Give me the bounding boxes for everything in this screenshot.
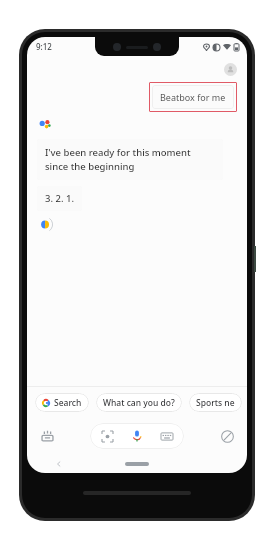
button[interactable]: What can you do? [96, 393, 182, 412]
button[interactable]: I've been ready for this moment since th… [37, 139, 223, 180]
button[interactable]: Snapshot [37, 426, 57, 446]
staticText: 9:12 [36, 41, 52, 52]
staticText: What can you do? [103, 397, 175, 409]
staticText: Beatbox for me [160, 91, 226, 103]
staticText: 3. 2. 1. [45, 192, 74, 205]
staticText: I've been ready for this moment since th… [45, 146, 215, 173]
staticText: Sports ne [196, 397, 235, 409]
staticText: Search [54, 397, 82, 409]
button[interactable]: Keyboard [158, 427, 176, 445]
button[interactable]: Back [53, 458, 65, 470]
button[interactable]: 3. 2. 1. [37, 186, 82, 211]
button[interactable]: Explore [217, 426, 237, 446]
button[interactable]: Google Lens [98, 427, 116, 445]
button[interactable]: Account [224, 63, 237, 76]
button[interactable]: Voice search [127, 426, 147, 446]
button[interactable]: Sports ne [189, 393, 242, 412]
button[interactable]: Home [125, 462, 149, 466]
button[interactable]: Beatbox for me [152, 85, 234, 109]
button[interactable]: Search [35, 393, 89, 412]
